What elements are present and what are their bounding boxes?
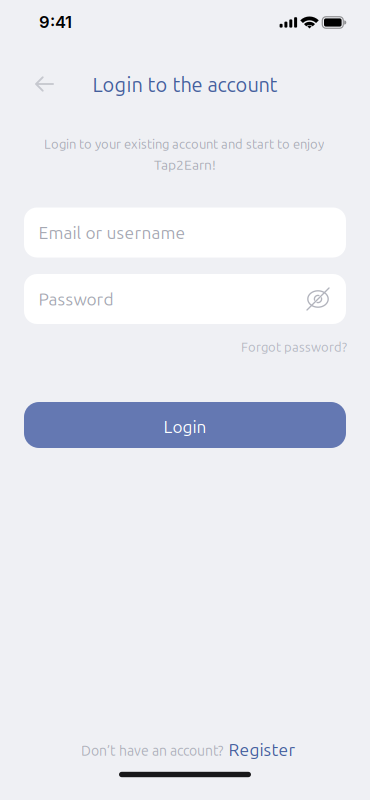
button[interactable]: Forgot password?	[241, 340, 347, 354]
staticText: Register	[228, 740, 295, 759]
staticText: Forgot password?	[241, 340, 347, 354]
button[interactable]: Login	[24, 402, 346, 448]
button[interactable]: Register	[222, 734, 301, 765]
button[interactable]: Back	[22, 64, 67, 103]
staticText: 9:41	[39, 12, 72, 32]
staticText: Email or username	[38, 223, 185, 242]
staticText: Login to the account	[92, 73, 277, 96]
button[interactable]: Password	[24, 274, 346, 324]
button[interactable]: Email or username	[24, 207, 346, 257]
button[interactable]: Show password	[306, 288, 330, 310]
staticText: Tap2Earn!	[154, 157, 216, 172]
staticText: Don’t have an account?	[81, 743, 223, 758]
staticText: Password	[38, 289, 113, 309]
staticText: Login to your existing account and start…	[44, 137, 324, 151]
staticText: Login	[163, 417, 206, 436]
